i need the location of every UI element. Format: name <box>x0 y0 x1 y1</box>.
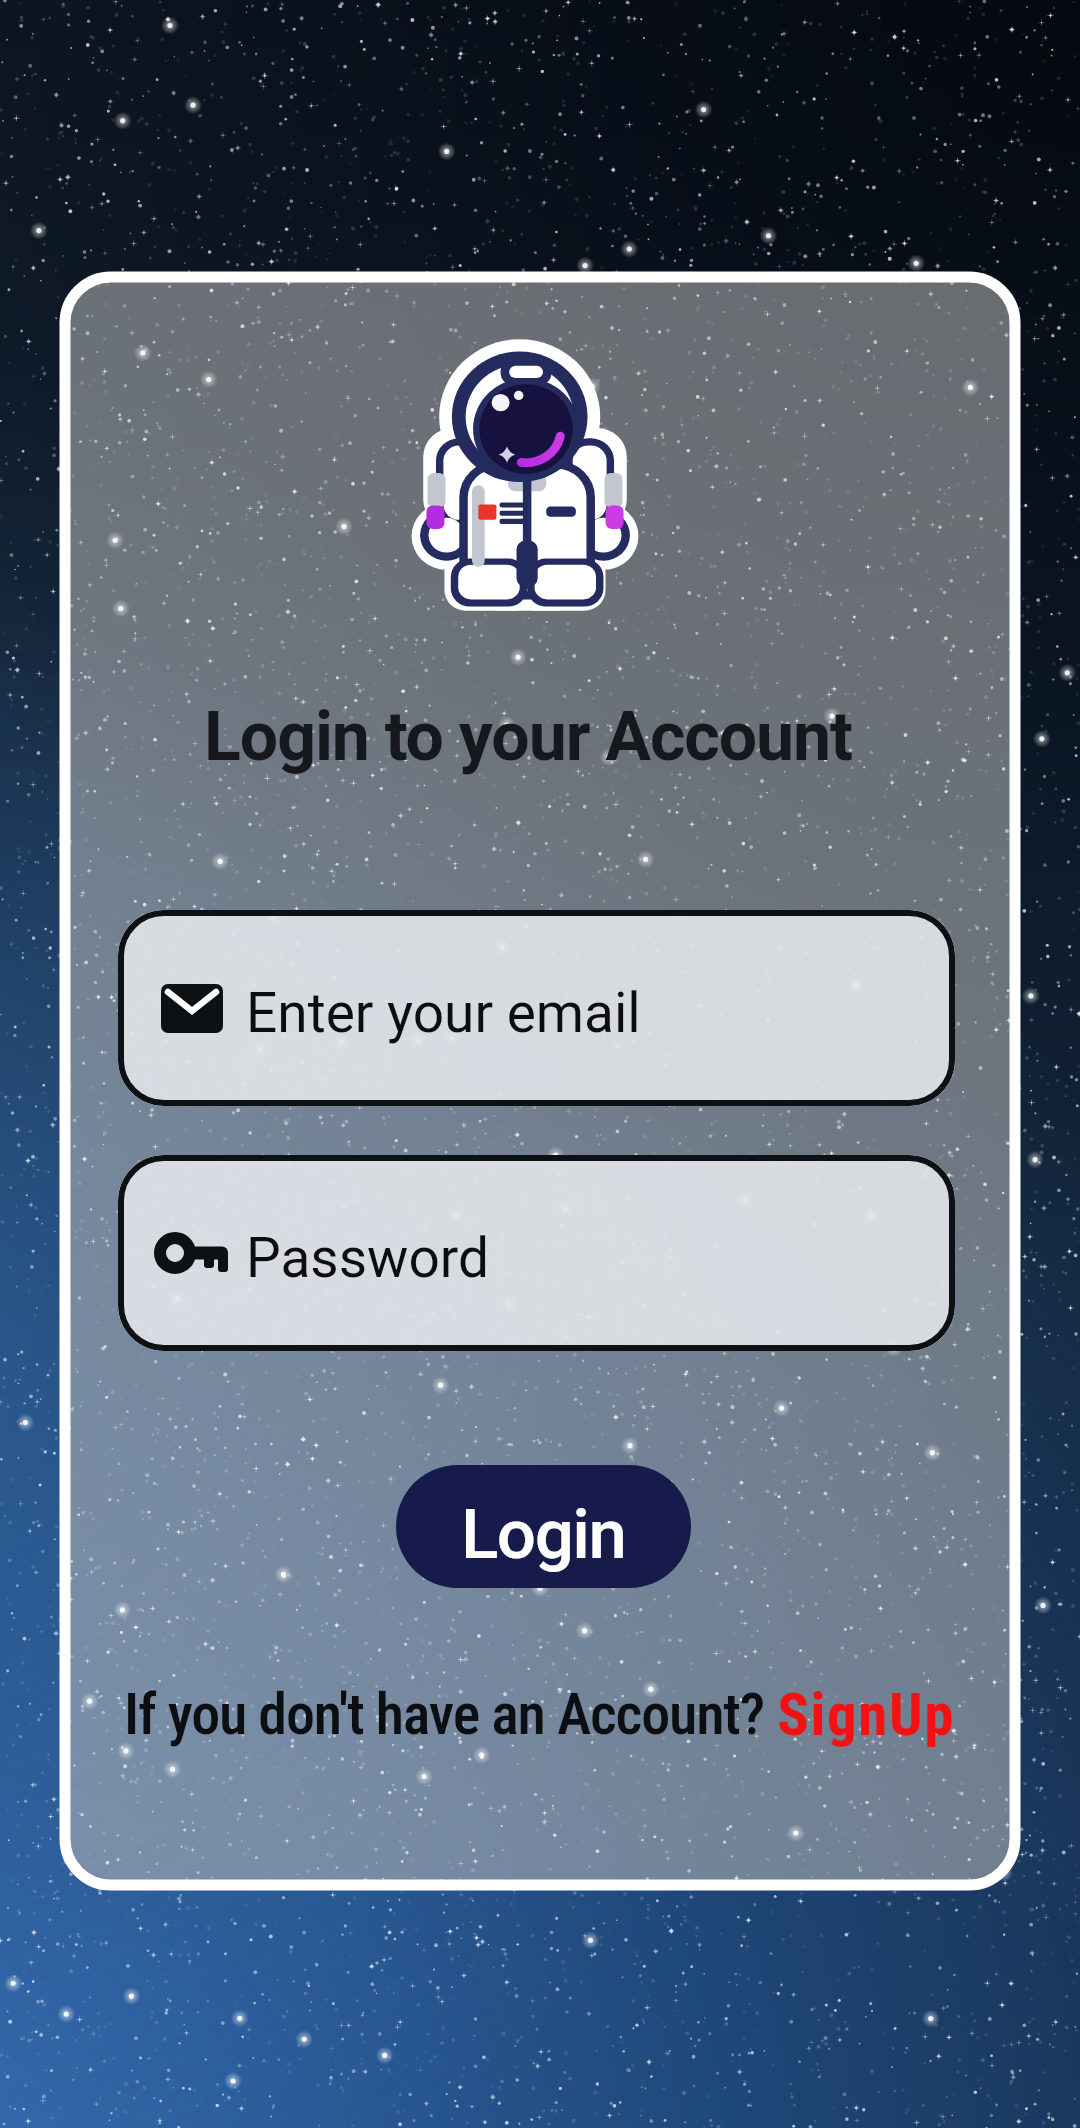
staticText: Enter your email <box>246 981 641 1045</box>
staticText: Login to your Account <box>204 697 852 777</box>
button[interactable]: Enter your email <box>118 910 955 1106</box>
button[interactable]: Password <box>118 1155 955 1351</box>
button[interactable]: SignUp <box>777 1680 956 1749</box>
staticText: Login <box>461 1494 626 1575</box>
staticText: Password <box>246 1226 489 1290</box>
staticText: If you don't have an Account? <box>124 1680 777 1748</box>
button[interactable]: Login <box>396 1465 691 1588</box>
